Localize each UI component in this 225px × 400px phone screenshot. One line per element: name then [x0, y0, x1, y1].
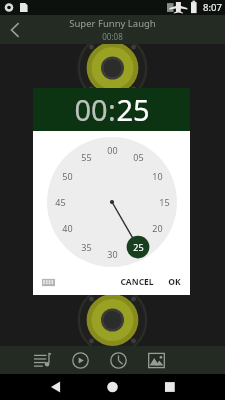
staticText: 35	[81, 241, 92, 253]
staticText: OK	[168, 276, 181, 288]
staticText: 15	[159, 196, 170, 208]
button[interactable]: Playlist	[30, 348, 54, 372]
button[interactable]: 20	[147, 218, 167, 238]
button[interactable]: 40	[57, 218, 77, 238]
button[interactable]: 30	[102, 244, 122, 264]
button[interactable]: 00	[102, 140, 122, 160]
staticText: 30	[107, 248, 118, 260]
button[interactable]: 35	[76, 237, 96, 257]
staticText: 00	[107, 144, 118, 156]
button[interactable]: OK	[164, 273, 185, 291]
button[interactable]: Timer	[106, 348, 130, 372]
button[interactable]: 50	[57, 166, 77, 186]
staticText: 55	[81, 151, 92, 163]
button[interactable]: 45	[50, 192, 70, 212]
button[interactable]: 55	[76, 147, 96, 167]
staticText: CANCEL	[120, 276, 154, 288]
staticText: 20	[152, 222, 163, 234]
staticText: 45	[55, 196, 66, 208]
button[interactable]: CANCEL	[116, 273, 158, 291]
staticText: 00:08	[102, 31, 123, 42]
staticText: 8:07	[203, 1, 222, 14]
button[interactable]: Image	[144, 348, 168, 372]
button[interactable]: 00	[74, 90, 108, 129]
staticText: 25	[116, 90, 150, 129]
staticText: 25	[133, 241, 144, 253]
staticText: 10	[152, 170, 163, 182]
button[interactable]: Back	[0, 15, 30, 44]
button[interactable]: 15	[154, 192, 174, 212]
staticText: 00	[74, 90, 108, 129]
staticText: 50	[62, 170, 73, 182]
staticText: :	[108, 90, 116, 129]
button[interactable]: 25	[116, 90, 150, 129]
staticText: 40	[62, 222, 73, 234]
staticText: 05	[133, 151, 144, 163]
button[interactable]: 05	[128, 147, 148, 167]
button[interactable]: 25	[128, 237, 148, 257]
button[interactable]: Keyboard input	[38, 272, 58, 292]
button[interactable]: Play	[68, 348, 92, 372]
staticText: Super Funny Laugh	[69, 17, 156, 30]
button[interactable]: 10	[147, 166, 167, 186]
